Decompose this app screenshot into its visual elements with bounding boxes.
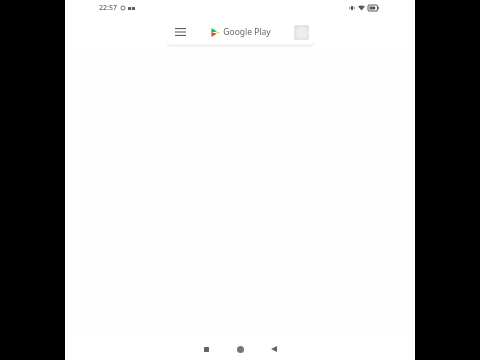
button[interactable]: Home bbox=[226, 340, 254, 358]
button[interactable]: Account bbox=[288, 20, 314, 44]
staticText: Google Play bbox=[223, 26, 271, 38]
button[interactable]: Open navigation menu bbox=[167, 20, 314, 44]
button[interactable]: Recent apps bbox=[192, 340, 220, 358]
button[interactable]: Back bbox=[260, 340, 288, 358]
button[interactable]: Open navigation menu bbox=[167, 20, 193, 44]
staticText: 22:57 bbox=[99, 3, 117, 13]
